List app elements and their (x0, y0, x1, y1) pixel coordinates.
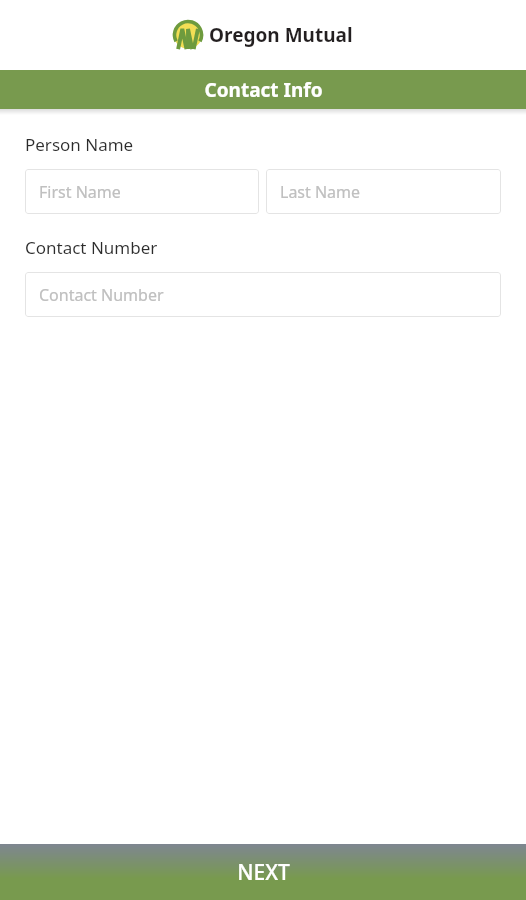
button[interactable]: First Name (25, 169, 259, 214)
staticText: Contact Info (204, 77, 323, 103)
button[interactable]: Last Name (266, 169, 501, 214)
staticText: NEXT (237, 858, 290, 887)
staticText: Last Name (280, 181, 361, 203)
staticText: Contact Number (25, 236, 158, 259)
button[interactable]: Contact Number (25, 272, 501, 317)
staticText: First Name (39, 181, 121, 203)
staticText: Oregon Mutual (209, 22, 353, 48)
staticText: Contact Number (39, 284, 164, 306)
button[interactable]: NEXT (0, 844, 526, 900)
staticText: Person Name (25, 133, 134, 156)
